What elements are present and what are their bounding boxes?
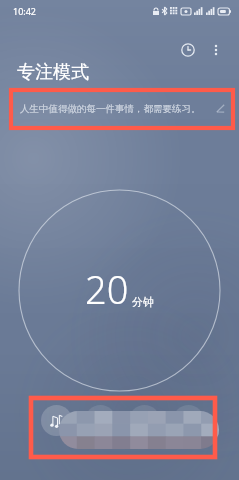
button[interactable]: Option 4 — [173, 405, 204, 436]
button[interactable]: Set duration — [18, 189, 221, 392]
staticText: 10:42 — [13, 5, 37, 17]
staticText: 分钟 — [132, 295, 154, 309]
staticText: 20 — [85, 263, 129, 315]
button[interactable]: Edit quote — [211, 100, 229, 118]
button[interactable]: Option 3 — [129, 405, 160, 436]
button[interactable]: Option 2 — [85, 405, 116, 436]
staticText: 专注模式 — [17, 61, 89, 84]
button[interactable]: Focus history — [174, 36, 202, 64]
staticText: 人生中值得做的每一件事情，都需要练习。 — [20, 103, 211, 115]
button[interactable]: More options — [202, 36, 230, 64]
button[interactable]: White noise — [41, 405, 72, 436]
button[interactable]: 人生中值得做的每一件事情，都需要练习。 — [11, 90, 233, 128]
